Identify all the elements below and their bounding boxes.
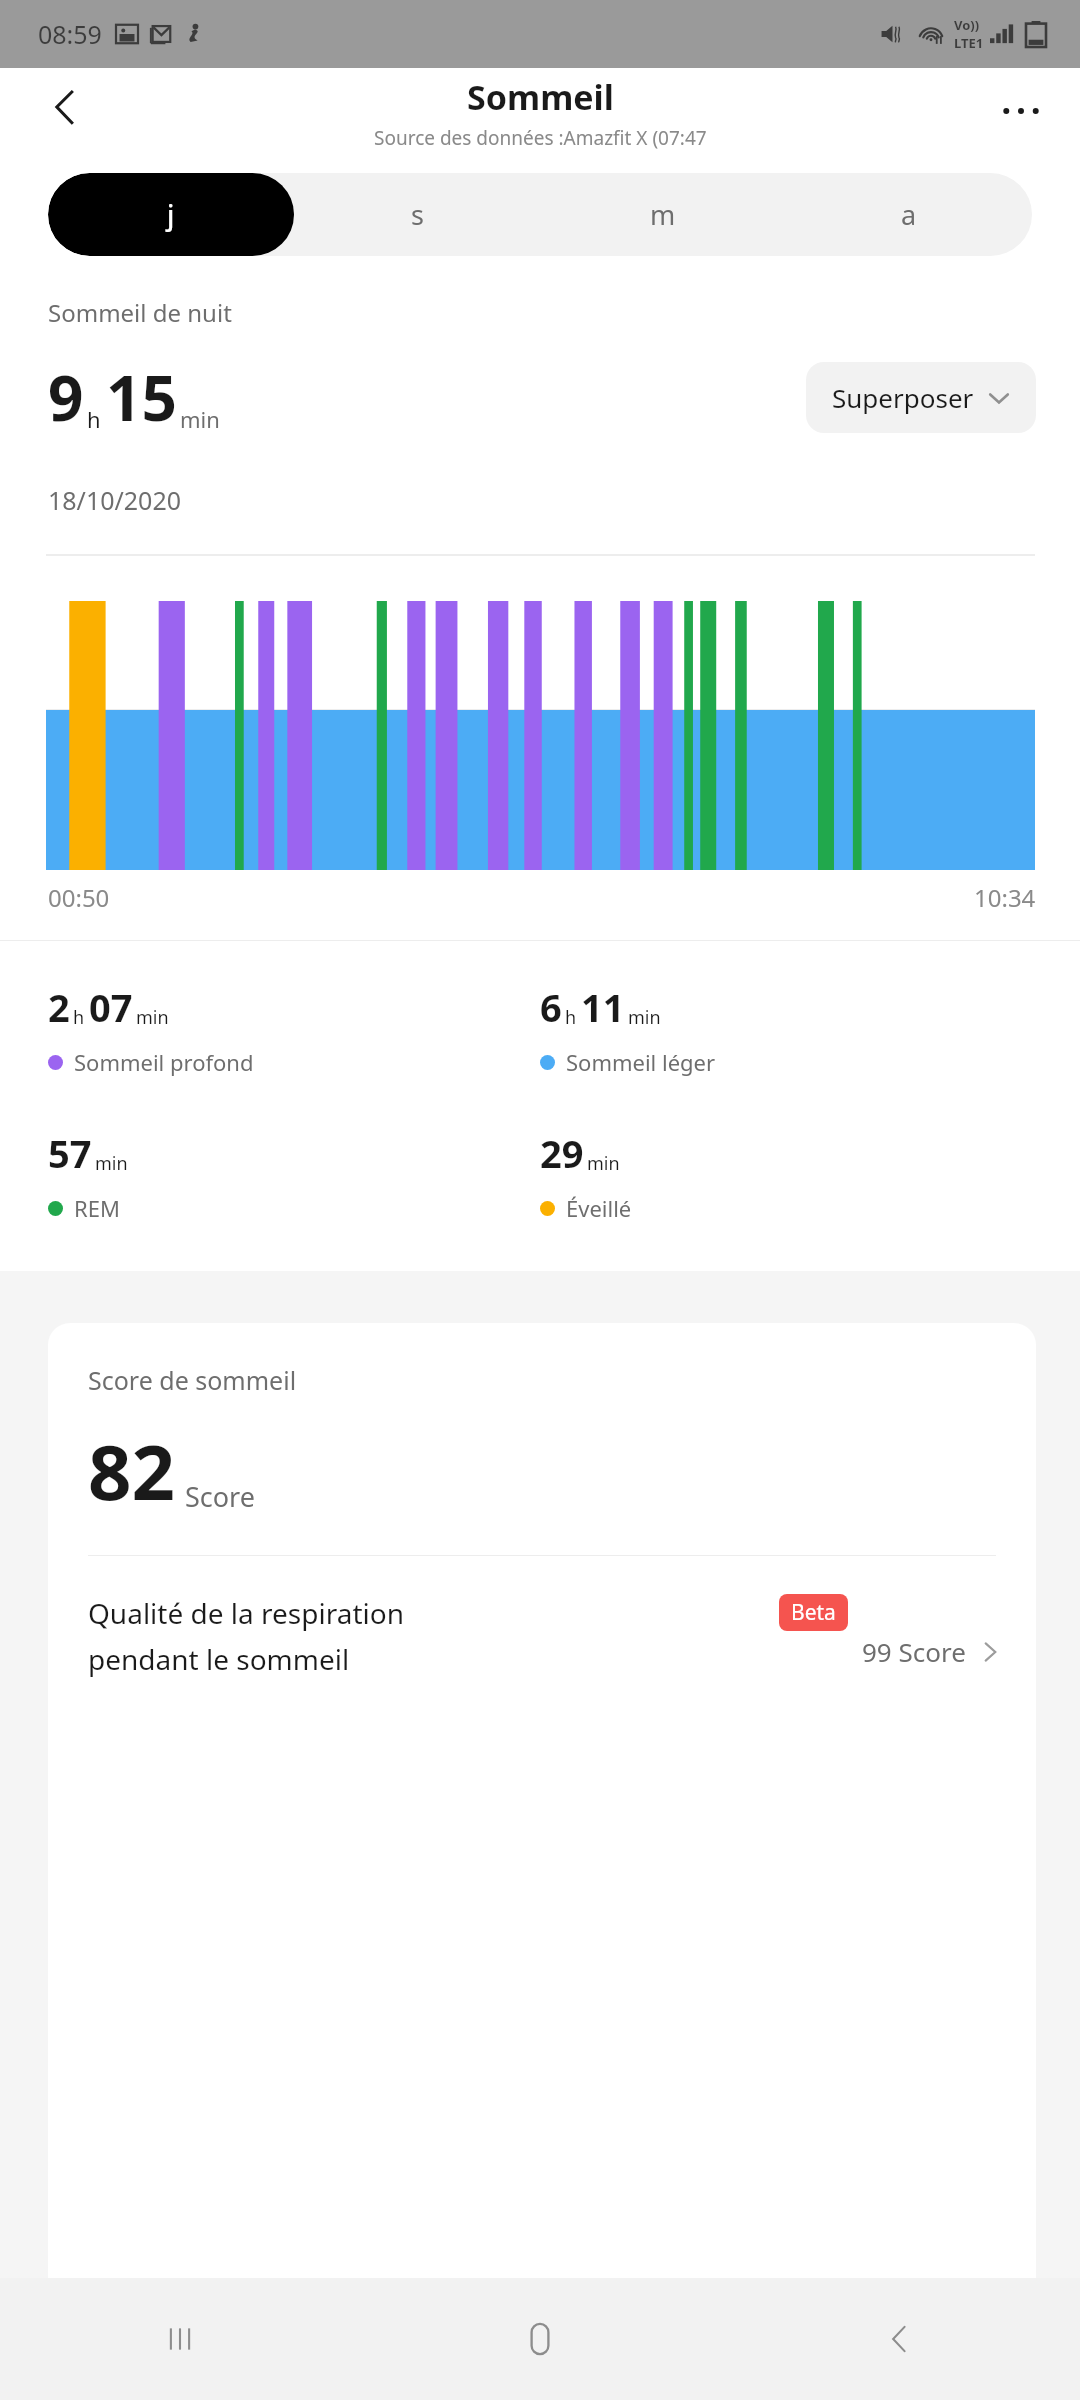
staticText: Superposer [832,380,974,415]
staticText: min [587,1151,620,1176]
staticText: h [87,404,101,434]
staticText: 00:50 [48,881,110,914]
staticText: 10:34 [974,881,1036,914]
staticText: h [565,1005,577,1030]
staticText: Beta [791,1598,836,1627]
staticText: 6 [540,981,562,1033]
button[interactable]: m [540,173,786,256]
staticText: LTE1 [954,34,984,52]
staticText: 29 [540,1127,584,1179]
button[interactable]: a [786,173,1032,256]
staticText: Sommeil de nuit [48,296,232,329]
staticText: Source des données :Amazfit X (07:47 [374,125,707,151]
staticText: 11 [581,981,625,1033]
staticText: 07 [89,981,133,1033]
staticText: 08:59 [38,17,102,51]
staticText: Éveillé [566,1193,632,1223]
staticText: j [167,196,175,233]
staticText: 18/10/2020 [48,483,182,517]
button[interactable]: More options [988,78,1054,144]
button[interactable]: s [294,173,540,256]
button[interactable]: j [48,173,294,256]
staticText: min [95,1151,128,1176]
button[interactable]: Score de sommeil [48,1323,1036,2278]
staticText: 99 Score [862,1634,966,1669]
staticText: Sommeil profond [74,1047,254,1077]
button[interactable]: Back [32,74,98,140]
staticText: REM [74,1193,120,1223]
staticText: a [901,196,917,233]
button[interactable]: Superposer [806,362,1036,433]
staticText: Qualité de la respiration pendant le som… [88,1594,779,1678]
button[interactable]: Back [720,2278,1080,2400]
staticText: 15 [106,355,177,439]
staticText: Score [185,1478,255,1515]
staticText: m [650,196,676,233]
staticText: min [628,1005,661,1030]
staticText: Sommeil [467,74,614,120]
button[interactable]: Home [360,2278,720,2400]
staticText: min [180,404,220,434]
staticText: 82 [88,1419,175,1523]
button[interactable]: Recent apps [0,2278,360,2400]
staticText: min [136,1005,169,1030]
staticText: Sommeil léger [566,1047,716,1077]
staticText: 57 [48,1127,92,1179]
staticText: h [73,1005,85,1030]
staticText: 9 [48,355,84,439]
staticText: 2 [48,981,70,1033]
staticText: Score de sommeil [88,1363,297,1397]
staticText: s [411,196,424,233]
staticText: Vo)) [954,16,980,34]
